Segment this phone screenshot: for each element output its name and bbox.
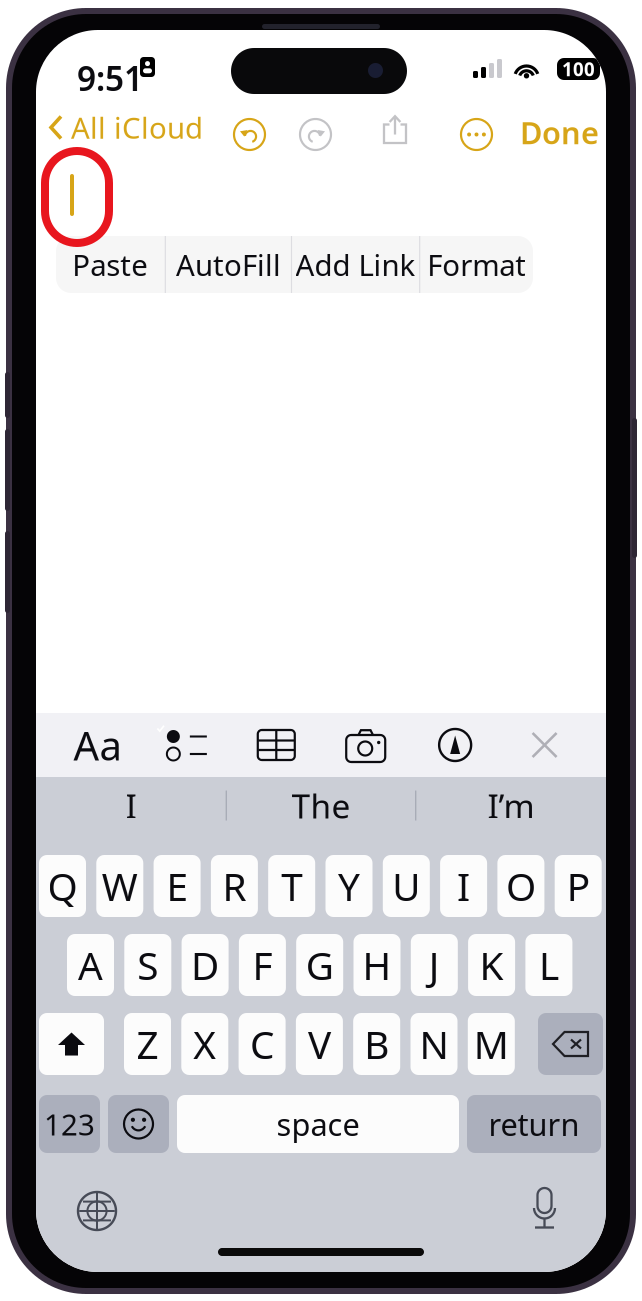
button[interactable]: Next keyboard [71,1185,123,1237]
button[interactable]: All iCloud [40,96,203,159]
button[interactable]: F [239,934,286,996]
button[interactable]: M [468,1013,515,1075]
staticText: 100 [562,57,595,81]
staticText: T [281,860,302,912]
staticText: K [480,939,504,991]
staticText: S [137,939,158,991]
button[interactable]: Shift [39,1013,104,1075]
button[interactable]: H [353,934,400,996]
staticText: Z [136,1018,158,1070]
button[interactable]: V [296,1013,343,1075]
button[interactable]: X [181,1013,228,1075]
button[interactable]: I [440,855,487,917]
button[interactable]: D [182,934,229,996]
staticText: Q [47,860,77,912]
button[interactable]: W [96,855,143,917]
button[interactable]: G [296,934,343,996]
button[interactable]: Add Link [292,236,419,293]
staticText: 9:51 [77,56,143,100]
button[interactable]: Redo [290,109,341,160]
staticText: Format [427,245,526,284]
button[interactable]: space [177,1095,459,1153]
button[interactable]: Undo [224,109,275,160]
staticText: Done [520,112,599,153]
button[interactable]: Format [420,236,533,293]
staticText: return [488,1104,579,1144]
button[interactable]: Z [124,1013,171,1075]
staticText: P [567,860,590,912]
button[interactable]: A [67,934,114,996]
button[interactable]: Paste [56,236,165,293]
button[interactable]: Hide keyboard [517,713,573,777]
button[interactable]: Emoji [108,1095,169,1153]
staticText: R [222,860,246,912]
staticText: D [191,939,219,991]
staticText: G [306,939,334,991]
staticText: All iCloud [71,108,203,147]
button[interactable]: More options [451,109,502,160]
staticText: Y [338,860,360,912]
button[interactable]: Y [325,855,372,917]
staticText: X [193,1018,216,1070]
button[interactable]: The [227,777,415,834]
button[interactable]: AutoFill [166,236,291,293]
button[interactable]: Delete [538,1013,603,1075]
button[interactable]: L [525,934,572,996]
staticText: The [291,783,350,828]
button[interactable]: S [124,934,171,996]
button[interactable]: P [555,855,602,917]
button[interactable]: U [383,855,430,917]
button[interactable]: I [37,777,226,834]
staticText: J [429,939,440,991]
button[interactable]: Share [373,105,417,155]
button[interactable]: Checklist [159,713,215,777]
button[interactable]: return [467,1095,601,1153]
button[interactable]: Camera [338,713,394,777]
staticText: O [506,860,536,912]
staticText: W [102,860,138,912]
staticText: C [250,1018,274,1070]
staticText: AutoFill [176,245,281,284]
button[interactable]: Format text [69,713,125,777]
button[interactable]: B [353,1013,400,1075]
button[interactable]: K [468,934,515,996]
button[interactable]: R [211,855,258,917]
staticText: H [362,939,391,991]
staticText: Aa [73,718,121,771]
button[interactable]: T [268,855,315,917]
staticText: I [126,783,137,828]
staticText: B [364,1018,389,1070]
staticText: N [419,1018,448,1070]
staticText: 123 [44,1104,95,1143]
staticText: E [167,860,188,912]
button[interactable]: Dictation [523,1181,566,1238]
staticText: Add Link [296,245,416,284]
button[interactable]: J [411,934,458,996]
button[interactable]: Table [248,713,304,777]
button[interactable]: C [239,1013,286,1075]
button[interactable]: O [497,855,544,917]
staticText: L [539,939,559,991]
staticText: A [78,939,103,991]
staticText: M [474,1018,509,1070]
button[interactable]: Done [510,102,609,163]
button[interactable]: 123 [39,1095,100,1153]
staticText: I’m [487,783,534,828]
staticText: space [276,1104,359,1144]
button[interactable]: I’m [416,777,605,834]
button[interactable]: Q [39,855,86,917]
staticText: I [457,860,470,912]
button[interactable]: E [154,855,201,917]
button[interactable]: Markup [427,713,483,777]
staticText: U [392,860,420,912]
staticText: Paste [72,245,148,284]
staticText: V [308,1018,331,1070]
staticText: F [252,939,272,991]
button[interactable]: N [410,1013,457,1075]
